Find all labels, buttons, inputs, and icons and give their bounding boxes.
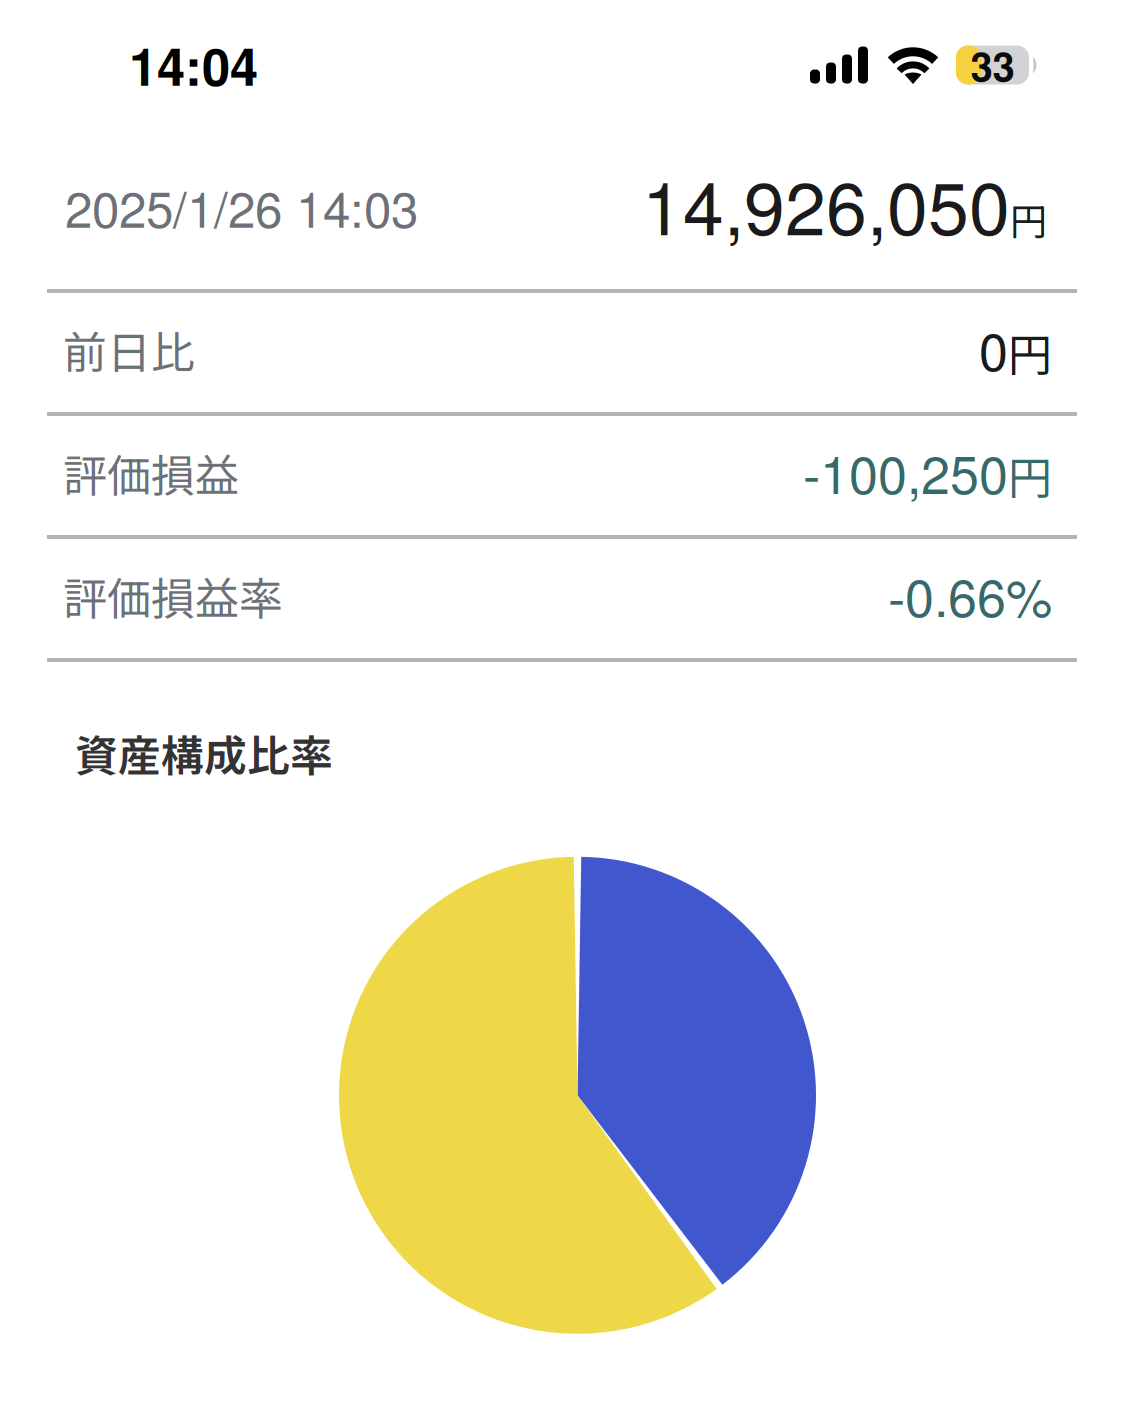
staticText: 14,926,050 bbox=[642, 151, 1010, 256]
staticText: -0.66% bbox=[888, 557, 1052, 632]
staticText: 資産構成比率 bbox=[75, 722, 333, 784]
staticText: 円 bbox=[1010, 192, 1047, 246]
staticText: 評価損益率 bbox=[63, 564, 283, 627]
button[interactable]: 評価損益率 bbox=[0, 539, 1125, 658]
staticText: 33 bbox=[970, 36, 1014, 94]
staticText: 円 bbox=[1008, 320, 1052, 384]
staticText: -100,250 bbox=[803, 434, 1008, 509]
button[interactable]: 評価損益 bbox=[0, 416, 1125, 535]
staticText: 14:04 bbox=[129, 29, 258, 101]
button[interactable]: 2025/1/26 14:03 bbox=[0, 130, 1125, 289]
button[interactable]: 前日比 bbox=[0, 293, 1125, 412]
staticText: 前日比 bbox=[63, 318, 195, 381]
staticText: 円 bbox=[1008, 443, 1052, 507]
staticText: 2025/1/26 14:03 bbox=[65, 171, 418, 242]
staticText: 0 bbox=[979, 311, 1008, 386]
staticText: 評価損益 bbox=[63, 441, 239, 504]
